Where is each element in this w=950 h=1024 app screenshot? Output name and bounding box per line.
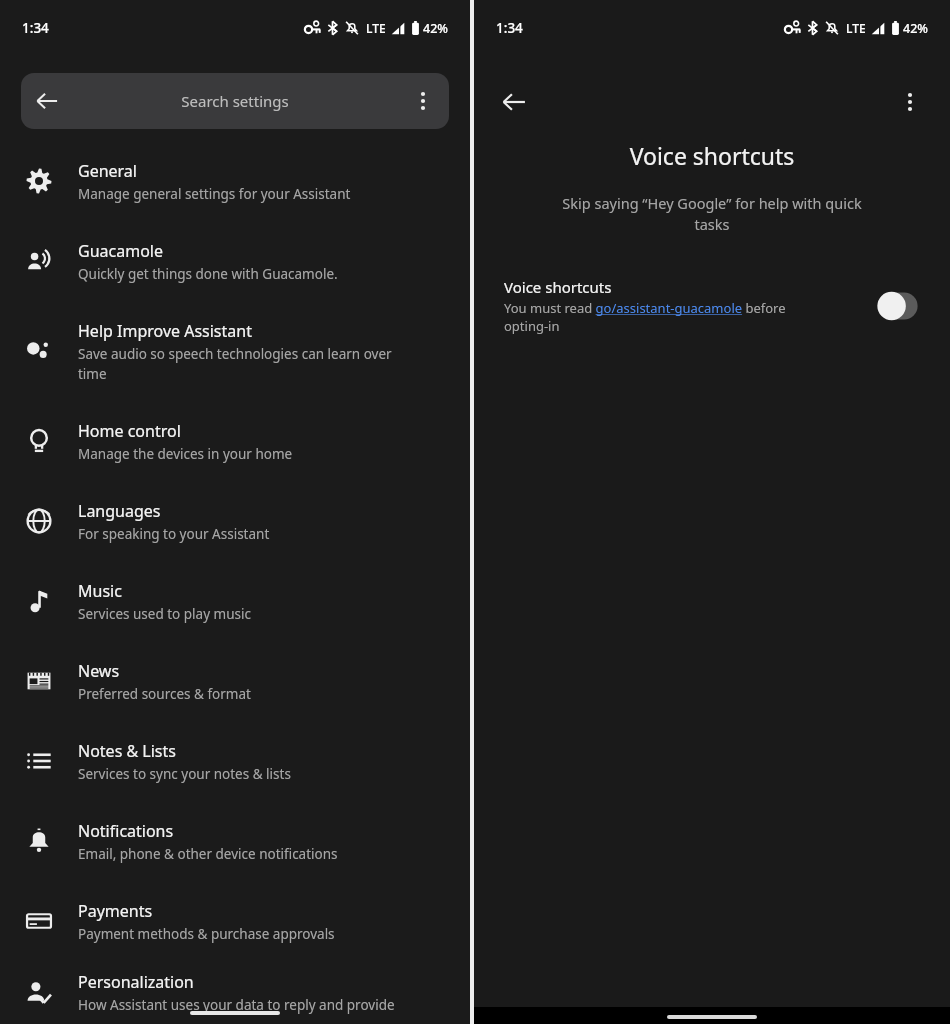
staticText: Manage the devices in your home: [78, 445, 293, 463]
staticText: Services used to play music: [78, 605, 251, 623]
button[interactable]: Voice shortcuts: [474, 277, 950, 335]
staticText: For speaking to your Assistant: [78, 525, 270, 543]
staticText: Payment methods & purchase approvals: [78, 925, 335, 943]
staticText: Notifications: [78, 820, 174, 842]
button[interactable]: More options: [397, 75, 449, 127]
button[interactable]: Notifications: [0, 801, 470, 881]
staticText: 42%: [903, 20, 928, 37]
button[interactable]: Home control: [0, 401, 470, 481]
staticText: Personalization: [78, 971, 194, 993]
button[interactable]: Notes & Lists: [0, 721, 470, 801]
button[interactable]: Back: [488, 76, 540, 128]
staticText: LTE: [366, 20, 386, 36]
staticText: Manage general settings for your Assista…: [78, 185, 351, 203]
button[interactable]: Voice shortcuts toggle: [876, 290, 928, 322]
staticText: Home control: [78, 420, 181, 442]
staticText: Search settings: [73, 91, 397, 111]
button[interactable]: Help Improve Assistant: [0, 301, 470, 401]
staticText: Voice shortcuts: [474, 140, 950, 171]
button[interactable]: News: [0, 641, 470, 721]
button[interactable]: Languages: [0, 481, 470, 561]
button[interactable]: Music: [0, 561, 470, 641]
button[interactable]: General: [0, 141, 470, 221]
staticText: Skip saying “Hey Google” for help with q…: [514, 193, 910, 235]
staticText: Save audio so speech technologies can le…: [78, 345, 392, 383]
staticText: Email, phone & other device notification…: [78, 845, 338, 863]
staticText: 1:34: [496, 19, 523, 37]
button[interactable]: Payments: [0, 881, 470, 961]
button[interactable]: Guacamole: [0, 221, 470, 301]
button[interactable]: Back: [21, 73, 449, 129]
staticText: Quickly get things done with Guacamole.: [78, 265, 338, 283]
staticText: Music: [78, 580, 122, 602]
button[interactable]: More options: [884, 76, 936, 128]
staticText: Languages: [78, 500, 161, 522]
staticText: Help Improve Assistant: [78, 320, 252, 342]
button[interactable]: Back: [21, 75, 73, 127]
staticText: Preferred sources & format: [78, 685, 251, 703]
staticText: 1:34: [22, 19, 49, 37]
staticText: News: [78, 660, 120, 682]
staticText: Voice shortcuts: [504, 277, 612, 297]
staticText: Payments: [78, 900, 153, 922]
staticText: LTE: [846, 20, 866, 36]
staticText: Notes & Lists: [78, 740, 176, 762]
button[interactable]: Personalization: [0, 961, 470, 1024]
staticText: General: [78, 160, 137, 182]
staticText: Services to sync your notes & lists: [78, 765, 291, 783]
staticText: 42%: [423, 20, 448, 37]
staticText: You must read go/assistant-guacamole bef…: [504, 299, 786, 335]
staticText: How Assistant uses your data to reply an…: [78, 996, 395, 1014]
staticText: Guacamole: [78, 240, 163, 262]
